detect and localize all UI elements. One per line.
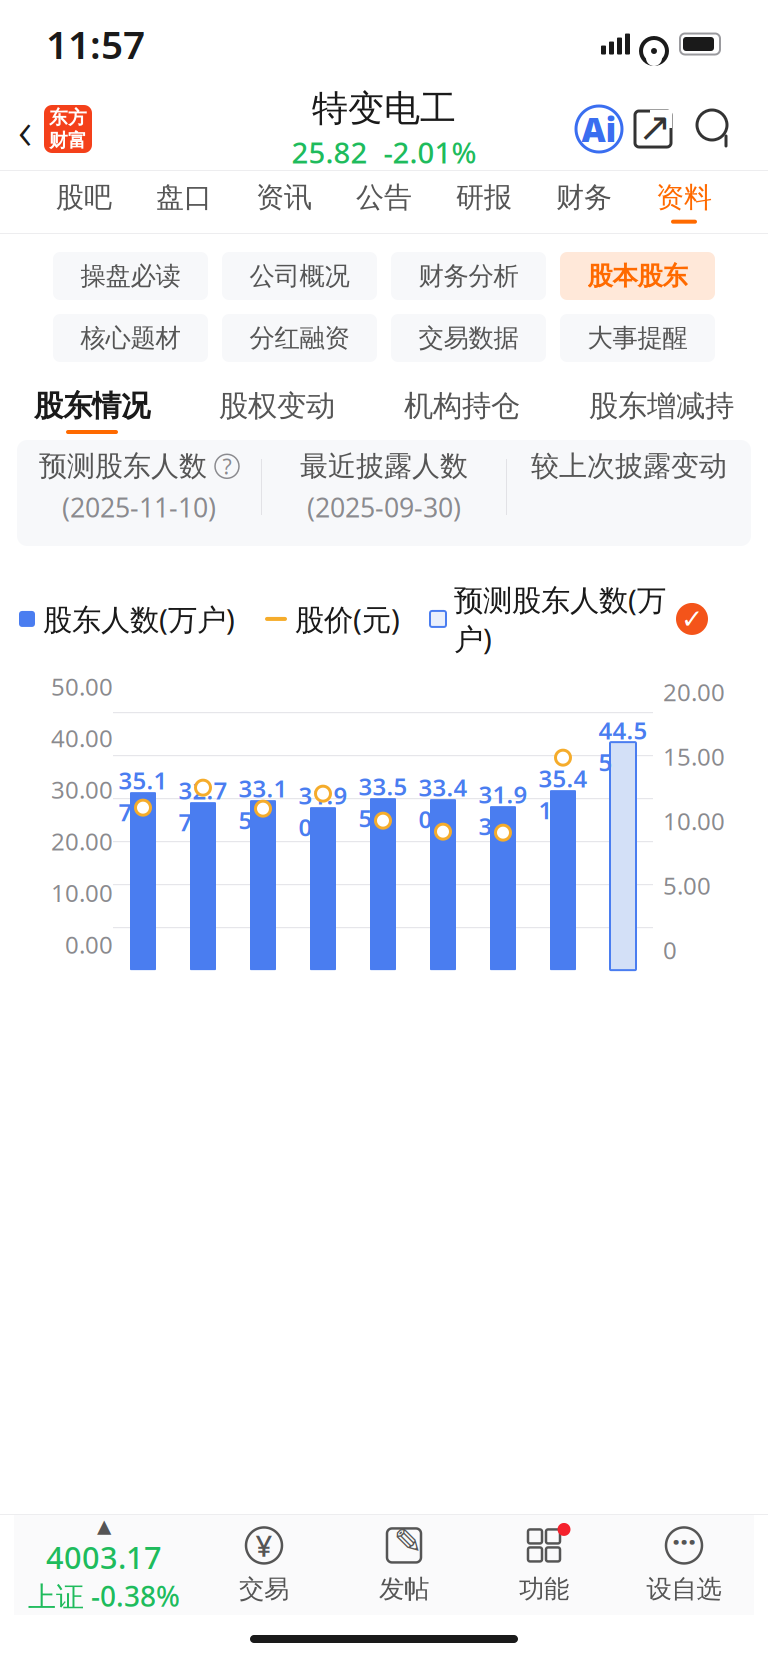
staticText: 预测股东人数(万户) — [454, 580, 666, 658]
staticText: 设自选 — [646, 1573, 721, 1604]
button[interactable]: 股东情况 — [34, 383, 150, 439]
staticText: 财务分析 — [418, 260, 518, 291]
staticText: 5.00 — [663, 869, 711, 901]
button[interactable]: 大事提醒 — [560, 314, 715, 362]
staticText: 资讯 — [256, 180, 312, 215]
button[interactable]: AI 助手 — [576, 106, 622, 152]
staticText: ¥ — [255, 1526, 272, 1565]
staticText: 35.17 — [118, 764, 167, 828]
staticText: 0.00 — [65, 928, 113, 960]
staticText: 研报 — [456, 180, 512, 215]
button[interactable]: 股东增减持 — [589, 383, 734, 439]
staticText: 33.15 — [238, 772, 287, 836]
staticText: 33.55 — [358, 770, 407, 834]
staticText: 最近披露人数 — [300, 449, 468, 483]
button[interactable]: 资讯 — [234, 172, 334, 232]
staticText: 资料 — [656, 180, 712, 215]
staticText: ? — [222, 452, 231, 480]
button[interactable]: 交易数据 — [391, 314, 546, 362]
staticText: 大事提醒 — [587, 322, 687, 353]
staticText: 分红融资 — [249, 322, 349, 353]
button[interactable]: 股权变动 — [219, 383, 335, 439]
staticText: 操盘必读 — [80, 260, 180, 291]
staticText: 30.00 — [51, 774, 113, 805]
button[interactable]: 搜索 — [684, 99, 746, 159]
staticText: 32.77 — [178, 774, 227, 838]
staticText: 股东情况 — [34, 388, 150, 424]
staticText: 交易 — [239, 1573, 289, 1604]
staticText: ✓ — [681, 604, 703, 634]
button[interactable]: 资料 — [634, 172, 734, 232]
staticText: 31.93 — [478, 778, 527, 842]
staticText: ··· — [672, 1522, 696, 1561]
staticText: 核心题材 — [80, 322, 180, 353]
staticText: 15.00 — [663, 740, 725, 772]
staticText: 20.00 — [51, 825, 113, 857]
button[interactable]: ✎ — [334, 1516, 474, 1614]
button[interactable]: 分红融资 — [222, 314, 377, 362]
staticText: 较上次披露变动 — [531, 449, 727, 483]
staticText: 33.40 — [418, 771, 467, 835]
button[interactable]: 财务 — [534, 172, 634, 232]
staticText: 公司概况 — [249, 260, 349, 291]
staticText: 财务 — [556, 180, 612, 215]
staticText: 上证 -0.38% — [28, 1577, 180, 1615]
button[interactable]: ¥ — [194, 1516, 334, 1614]
staticText: ↗ — [638, 104, 672, 150]
button[interactable]: 盘口 — [134, 172, 234, 232]
button[interactable]: 财务分析 — [391, 252, 546, 300]
button[interactable]: 股本股东 — [560, 252, 715, 300]
button[interactable]: ▲ — [14, 1516, 194, 1614]
button[interactable]: 公司概况 — [222, 252, 377, 300]
button[interactable]: 核心题材 — [53, 314, 208, 362]
button[interactable]: 机构持仓 — [404, 383, 520, 439]
staticText: 发帖 — [379, 1573, 429, 1604]
button[interactable]: 分享 — [622, 99, 684, 159]
button[interactable]: 公告 — [334, 172, 434, 232]
staticText: 10.00 — [663, 805, 725, 837]
staticText: 50.00 — [51, 670, 113, 702]
staticText: 18.50万 — [506, 1543, 611, 1582]
staticText: 人均持股金额(元) — [17, 1544, 229, 1581]
staticText: 10.00 — [51, 877, 113, 909]
staticText: 股东人数(万户) — [43, 599, 235, 638]
button[interactable]: 股吧 — [34, 172, 134, 232]
staticText: 31.90 — [298, 779, 347, 843]
staticText: 股东增减持 — [589, 388, 734, 424]
staticText: 股权变动 — [219, 388, 335, 424]
staticText: ▲ — [97, 1515, 111, 1537]
button[interactable]: 功能 — [474, 1516, 614, 1614]
button[interactable]: 研报 — [434, 172, 534, 232]
button[interactable]: ··· — [614, 1516, 754, 1614]
staticText: 20.00 — [663, 676, 725, 708]
staticText: ‹ — [18, 94, 32, 164]
staticText: 公告 — [356, 180, 412, 215]
button[interactable]: 返回 — [0, 94, 110, 164]
button[interactable]: 操盘必读 — [53, 252, 208, 300]
staticText: 25.82 -2.01% — [291, 133, 476, 172]
staticText: (2025-11-10) — [62, 489, 216, 525]
